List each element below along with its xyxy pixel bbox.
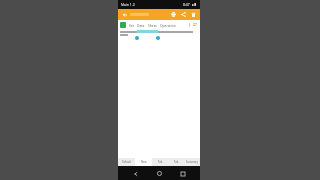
button[interactable]: Back: [130, 168, 141, 179]
button[interactable]: Data: [137, 23, 145, 27]
button[interactable]: Sheet: [148, 23, 157, 27]
button[interactable]: New: [135, 158, 152, 166]
button[interactable]: Summary: [184, 158, 200, 166]
button[interactable]: Sheet: [120, 22, 126, 28]
button[interactable]: Tab: [168, 158, 184, 166]
button[interactable]: Delete: [190, 11, 197, 18]
staticText: Summary: [186, 160, 198, 164]
button[interactable]: Recents: [177, 168, 188, 179]
button[interactable]: Home: [154, 168, 165, 179]
button[interactable]: Default: [118, 158, 135, 166]
staticText: Tab: [174, 160, 179, 164]
staticText: 8:47: [183, 2, 190, 7]
button[interactable]: Tab: [152, 158, 168, 166]
staticText: Data: [137, 23, 145, 27]
staticText: Set: [129, 23, 134, 27]
staticText: Operation: [160, 23, 176, 27]
staticText: Main 1.2: [121, 2, 135, 7]
staticText: Sheet: [148, 23, 157, 27]
staticText: Default: [122, 160, 131, 164]
staticText: Tab: [158, 160, 163, 164]
button[interactable]: Operation: [160, 23, 176, 27]
button[interactable]: Back: [121, 11, 128, 18]
button[interactable]: Menu: [192, 22, 198, 28]
button[interactable]: Print: [170, 11, 177, 18]
button[interactable]: Set: [129, 23, 134, 27]
button[interactable]: Share: [180, 11, 187, 18]
staticText: New: [141, 160, 147, 164]
